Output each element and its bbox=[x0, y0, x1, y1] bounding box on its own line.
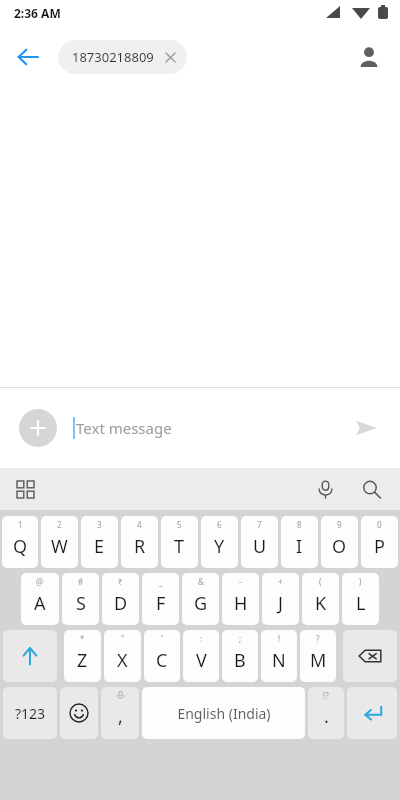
staticText: W bbox=[51, 534, 68, 559]
button[interactable]: Backspace bbox=[343, 630, 397, 682]
button[interactable]: _ bbox=[142, 573, 179, 625]
staticText: ) bbox=[359, 576, 362, 587]
staticText: O bbox=[332, 534, 347, 559]
staticText: 1 bbox=[18, 519, 23, 530]
staticText: 8 bbox=[297, 519, 302, 530]
staticText: R bbox=[134, 534, 146, 559]
button[interactable]: - bbox=[222, 573, 259, 625]
button[interactable]: ₹ bbox=[102, 573, 139, 625]
button[interactable]: 1 bbox=[2, 516, 38, 568]
staticText: G bbox=[194, 591, 208, 616]
staticText: 2:36 AM bbox=[14, 5, 61, 21]
staticText: I bbox=[296, 534, 303, 559]
button[interactable]: 8 bbox=[281, 516, 318, 568]
staticText: 3 bbox=[97, 519, 102, 530]
button[interactable]: Shift bbox=[3, 630, 57, 682]
staticText: ' bbox=[161, 633, 163, 644]
button[interactable]: & bbox=[182, 573, 219, 625]
staticText: @ bbox=[36, 576, 44, 587]
staticText: ! bbox=[278, 633, 281, 644]
button[interactable]: ( bbox=[302, 573, 339, 625]
button[interactable]: ? bbox=[300, 630, 336, 682]
staticText: Y bbox=[214, 534, 225, 559]
staticText: Text message bbox=[76, 418, 172, 438]
button[interactable]: @ bbox=[21, 573, 59, 625]
staticText: # bbox=[78, 576, 84, 587]
staticText: P bbox=[374, 534, 385, 559]
staticText: C bbox=[156, 648, 168, 673]
staticText: . bbox=[324, 704, 329, 729]
button[interactable]: Attach bbox=[19, 409, 57, 447]
button[interactable]: + bbox=[262, 573, 299, 625]
staticText: ? bbox=[316, 633, 320, 644]
button[interactable]: Text message bbox=[76, 418, 340, 438]
staticText: & bbox=[198, 576, 204, 587]
button[interactable]: 18730218809 bbox=[58, 40, 187, 74]
button[interactable]: Emoji bbox=[60, 687, 98, 739]
staticText: " bbox=[121, 633, 125, 644]
staticText: S bbox=[76, 591, 86, 616]
staticText: 18730218809 bbox=[72, 48, 154, 66]
button[interactable]: 9 bbox=[321, 516, 358, 568]
staticText: 5 bbox=[177, 519, 182, 530]
button[interactable]: 2 bbox=[41, 516, 78, 568]
button[interactable]: Clipboard bbox=[8, 472, 42, 506]
staticText: Q bbox=[13, 534, 28, 559]
staticText: 0 bbox=[377, 519, 382, 530]
staticText: ; bbox=[239, 633, 242, 644]
button[interactable]: , bbox=[101, 687, 139, 739]
button[interactable]: Back bbox=[8, 37, 48, 77]
button[interactable]: 6 bbox=[201, 516, 238, 568]
staticText: M bbox=[310, 648, 327, 673]
staticText: + bbox=[278, 576, 283, 587]
staticText: E bbox=[94, 534, 105, 559]
staticText: K bbox=[315, 591, 327, 616]
staticText: L bbox=[356, 591, 366, 616]
button[interactable]: 5 bbox=[161, 516, 198, 568]
button[interactable]: " bbox=[104, 630, 141, 682]
staticText: 6 bbox=[217, 519, 222, 530]
button[interactable]: ; bbox=[222, 630, 258, 682]
staticText: F bbox=[156, 591, 166, 616]
staticText: English (India) bbox=[177, 704, 271, 723]
staticText: ₹ bbox=[118, 576, 123, 587]
button[interactable]: 7 bbox=[241, 516, 278, 568]
staticText: _ bbox=[159, 576, 163, 587]
button[interactable]: ) bbox=[342, 573, 379, 625]
staticText: , bbox=[118, 704, 123, 729]
staticText: 2 bbox=[57, 519, 62, 530]
button[interactable]: English (India) bbox=[142, 687, 305, 739]
staticText: !? bbox=[323, 690, 329, 701]
staticText: J bbox=[278, 591, 283, 616]
staticText: X bbox=[117, 648, 128, 673]
button[interactable]: 3 bbox=[81, 516, 118, 568]
button[interactable]: !? bbox=[308, 687, 344, 739]
staticText: T bbox=[174, 534, 185, 559]
button[interactable]: ?123 bbox=[3, 687, 57, 739]
button[interactable]: : bbox=[183, 630, 219, 682]
button[interactable]: * bbox=[64, 630, 101, 682]
button[interactable]: # bbox=[62, 573, 99, 625]
staticText: : bbox=[200, 633, 203, 644]
staticText: 4 bbox=[137, 519, 142, 530]
button[interactable]: Voice input bbox=[308, 472, 342, 506]
staticText: U bbox=[253, 534, 267, 559]
button[interactable]: Contact bbox=[348, 36, 390, 78]
staticText: 7 bbox=[257, 519, 262, 530]
button[interactable]: Search bbox=[354, 472, 388, 506]
button[interactable]: ' bbox=[144, 630, 180, 682]
staticText: Z bbox=[77, 648, 88, 673]
button[interactable]: Send bbox=[344, 406, 388, 450]
staticText: ( bbox=[319, 576, 322, 587]
button[interactable]: 4 bbox=[121, 516, 158, 568]
button[interactable]: Enter bbox=[347, 687, 397, 739]
staticText: B bbox=[234, 648, 246, 673]
button[interactable]: 0 bbox=[361, 516, 398, 568]
button[interactable]: ! bbox=[261, 630, 297, 682]
staticText: V bbox=[196, 648, 207, 673]
staticText: H bbox=[234, 591, 248, 616]
staticText: 9 bbox=[337, 519, 342, 530]
staticText: - bbox=[239, 576, 242, 587]
staticText: N bbox=[272, 648, 286, 673]
staticText: A bbox=[34, 591, 46, 616]
